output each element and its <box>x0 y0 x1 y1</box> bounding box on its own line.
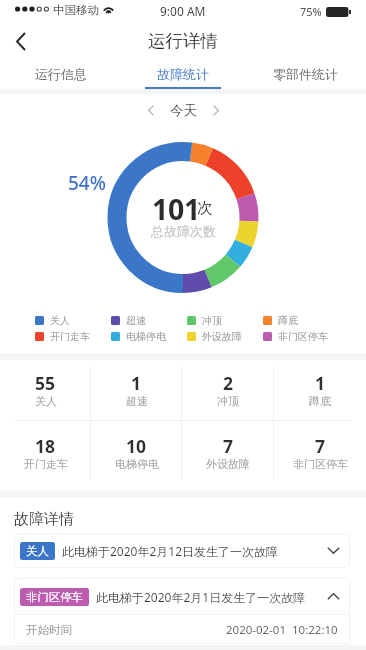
staticText: 关人 <box>26 544 49 558</box>
staticText: 此电梯于2020年2月1日发生了一次故障 <box>96 589 306 605</box>
staticText: 2020-02-01 10:22:10 <box>226 622 338 638</box>
staticText: 今天 <box>170 102 197 119</box>
staticText: 18 <box>35 434 56 458</box>
staticText: 运行详情 <box>148 30 218 52</box>
staticText: 总故障次数 <box>151 223 216 239</box>
button[interactable]: 故障统计 <box>122 60 244 89</box>
staticText: 10 <box>126 434 147 458</box>
staticText: 关人 <box>50 314 70 327</box>
staticText: 此电梯于2020年2月12日发生了一次故障 <box>62 543 279 559</box>
staticText: 非门区停车 <box>26 590 83 604</box>
button[interactable]: 零部件统计 <box>244 60 366 89</box>
staticText: 电梯停电 <box>126 330 166 343</box>
staticText: 运行信息 <box>35 66 87 82</box>
staticText: 故障统计 <box>157 66 209 82</box>
staticText: 超速 <box>126 314 146 327</box>
staticText: 超速 <box>126 394 148 408</box>
staticText: 75% <box>300 4 322 19</box>
staticText: 外设故障 <box>206 457 250 471</box>
button[interactable]: 今天 <box>148 102 219 119</box>
staticText: 2 <box>223 371 234 395</box>
staticText: 关人 <box>35 394 57 408</box>
staticText: 1 <box>315 371 326 395</box>
staticText: 54% <box>68 170 106 196</box>
staticText: 9:00 AM <box>160 3 206 19</box>
staticText: 零部件统计 <box>273 66 338 82</box>
staticText: 非门区停车 <box>293 457 348 471</box>
staticText: 7 <box>223 434 234 458</box>
button[interactable]: Back <box>0 22 42 60</box>
staticText: 7 <box>315 434 326 458</box>
button[interactable]: 关人 <box>14 533 350 568</box>
staticText: 冲顶 <box>217 394 239 408</box>
staticText: 非门区停车 <box>278 330 328 343</box>
staticText: 电梯停电 <box>115 457 159 471</box>
staticText: 次 <box>197 198 213 218</box>
staticText: 开门走车 <box>24 457 68 471</box>
staticText: 55 <box>35 371 56 395</box>
staticText: 中国移动 <box>53 3 99 17</box>
staticText: 蹲底 <box>278 314 298 327</box>
staticText: 开门走车 <box>50 330 90 343</box>
staticText: 1 <box>131 371 142 395</box>
staticText: 蹲底 <box>309 394 331 408</box>
staticText: 开始时间 <box>26 623 72 637</box>
staticText: 101 <box>152 190 201 229</box>
staticText: 故障详情 <box>14 510 74 529</box>
staticText: 冲顶 <box>202 314 222 327</box>
button[interactable]: 运行信息 <box>0 60 122 89</box>
staticText: 外设故障 <box>202 330 242 343</box>
button[interactable]: 非门区停车 <box>14 578 350 615</box>
